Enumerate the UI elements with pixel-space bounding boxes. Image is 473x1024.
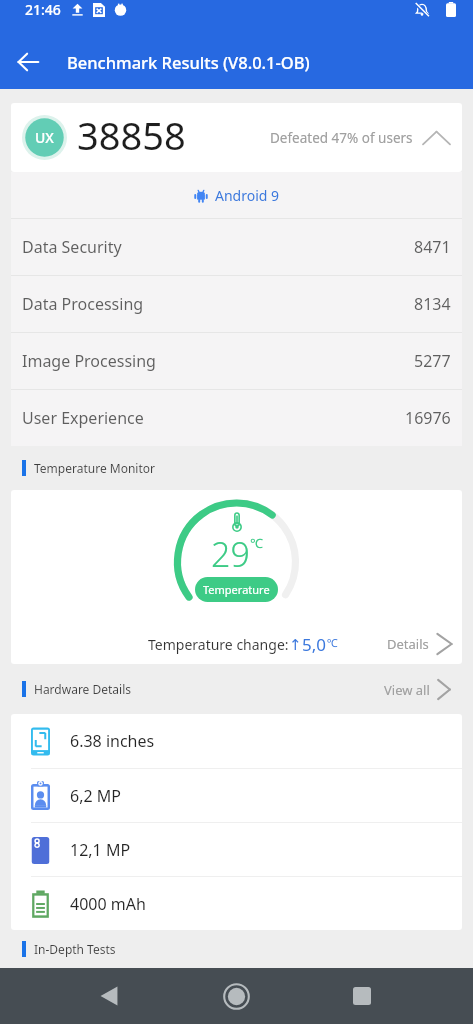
staticText: View all xyxy=(384,681,430,699)
button[interactable]: Home xyxy=(206,968,266,1024)
staticText: Data Security xyxy=(22,236,122,258)
staticText: Details xyxy=(387,635,429,653)
staticText: 12,1 MP xyxy=(70,839,131,861)
staticText: 21:46 xyxy=(25,0,61,19)
staticText: UX xyxy=(35,128,54,147)
staticText: 38858 xyxy=(77,109,186,161)
staticText: ↑ xyxy=(289,636,302,653)
staticText: 29 xyxy=(211,531,250,577)
button[interactable]: Data Security xyxy=(11,219,462,275)
staticText: 8134 xyxy=(414,293,451,315)
staticText: Temperature change: xyxy=(148,635,289,654)
button[interactable]: Recents xyxy=(332,968,392,1024)
staticText: 16976 xyxy=(405,407,451,429)
button[interactable]: View all xyxy=(384,679,451,700)
staticText: 5277 xyxy=(414,350,451,372)
button[interactable]: 12,1 MP xyxy=(11,823,462,876)
staticText: Benchmark Results (V8.0.1-OB) xyxy=(67,51,310,73)
button[interactable]: 4000 mAh xyxy=(11,877,462,930)
staticText: 6.38 inches xyxy=(70,730,155,752)
button[interactable]: Back xyxy=(79,968,139,1024)
button[interactable]: UX xyxy=(11,103,462,172)
staticText: 5,0 xyxy=(302,633,327,656)
staticText: User Experience xyxy=(22,407,144,429)
staticText: 4000 mAh xyxy=(70,893,146,915)
button[interactable]: Data Processing xyxy=(11,276,462,332)
staticText: Temperature Monitor xyxy=(34,460,155,476)
staticText: Android 9 xyxy=(215,186,280,205)
button[interactable]: 6.38 inches xyxy=(11,714,462,768)
button[interactable]: Details xyxy=(387,633,462,655)
button[interactable]: User Experience xyxy=(11,390,462,446)
button[interactable]: Back xyxy=(0,34,56,89)
staticText: 6,2 MP xyxy=(70,785,121,807)
staticText: In-Depth Tests xyxy=(34,941,116,957)
staticText: ℃ xyxy=(327,635,338,650)
staticText: Data Processing xyxy=(22,293,144,315)
staticText: Hardware Details xyxy=(34,681,132,697)
staticText: 8471 xyxy=(414,236,451,258)
staticText: Temperature xyxy=(203,582,270,597)
button[interactable]: Image Processing xyxy=(11,333,462,389)
staticText: Image Processing xyxy=(22,350,156,372)
staticText: Defeated 47% of users xyxy=(270,129,413,147)
staticText: ℃ xyxy=(250,534,263,552)
button[interactable]: 6,2 MP xyxy=(11,769,462,822)
